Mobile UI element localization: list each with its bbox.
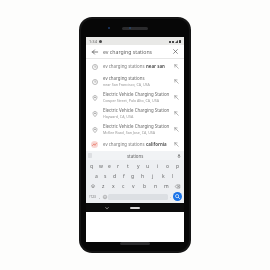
staticText: b	[143, 183, 147, 190]
button[interactable]: i	[154, 162, 162, 170]
staticText: v	[132, 183, 135, 190]
staticText: x	[112, 183, 115, 190]
staticText: ev charging stations	[103, 75, 145, 81]
staticText: Cowper Street, Palo Alto, CA, USA	[103, 98, 159, 103]
button[interactable]: ,	[97, 192, 102, 201]
staticText: Hayward, CA, USA	[103, 114, 134, 119]
button[interactable]: f	[120, 172, 127, 180]
button[interactable]: Electric Vehicle Charging Station	[86, 89, 184, 105]
staticText: y	[137, 163, 140, 170]
button[interactable]: o	[164, 162, 172, 170]
staticText: k	[162, 173, 165, 180]
button[interactable]: t	[124, 162, 132, 170]
button[interactable]: Insert suggestion	[172, 125, 180, 133]
staticText: i	[157, 163, 159, 170]
button[interactable]: Voice input	[176, 153, 182, 159]
staticText: stations	[127, 153, 144, 159]
button[interactable]: Emoji	[102, 192, 108, 201]
staticText: .	[170, 194, 172, 199]
staticText: m	[164, 183, 169, 190]
staticText: d	[113, 173, 117, 180]
staticText: o	[166, 163, 170, 170]
button[interactable]: Hide keyboard	[104, 205, 110, 211]
button[interactable]: .	[168, 192, 173, 201]
staticText: q	[90, 163, 94, 170]
staticText: McKee Road, San Jose, CA, USA	[103, 130, 156, 135]
staticText: g	[131, 173, 135, 180]
button[interactable]: Search	[173, 192, 182, 201]
button[interactable]: y	[134, 162, 142, 170]
staticText: 1:34	[89, 39, 97, 44]
staticText: z	[102, 183, 105, 190]
button[interactable]: a	[93, 172, 100, 180]
staticText: ?123	[89, 195, 96, 199]
staticText: c	[122, 183, 125, 190]
button[interactable]: ev charging stations	[86, 59, 184, 73]
staticText: Electric Vehicle Charging Station	[103, 123, 170, 129]
button[interactable]: z	[99, 182, 107, 190]
staticText: Electric Vehicle Charging Station	[103, 107, 170, 113]
staticText: t	[127, 163, 129, 170]
staticText: r	[117, 163, 120, 170]
button[interactable]: Insert suggestion	[172, 109, 180, 117]
button[interactable]: Clear search	[171, 47, 180, 56]
staticText: p	[176, 163, 180, 170]
button[interactable]: x	[109, 182, 117, 190]
staticText: j	[152, 173, 154, 180]
button[interactable]: b	[140, 182, 149, 190]
staticText: h	[141, 173, 145, 180]
button[interactable]: Back	[86, 45, 184, 58]
button[interactable]: Backspace	[173, 182, 182, 190]
button[interactable]: c	[119, 182, 127, 190]
button[interactable]: p	[174, 162, 182, 170]
button[interactable]: u	[144, 162, 152, 170]
button[interactable]: Insert suggestion	[172, 77, 180, 85]
button[interactable]: d	[111, 172, 118, 180]
button[interactable]: Electric Vehicle Charging Station	[86, 105, 184, 121]
button[interactable]: q	[88, 162, 95, 170]
staticText: near san franc…	[146, 63, 170, 69]
staticText: n	[154, 183, 158, 190]
button[interactable]: ?123	[88, 192, 97, 201]
button[interactable]: Shift	[88, 182, 97, 190]
staticText: near San Francisco, CA, USA	[103, 82, 150, 87]
button[interactable]: l	[169, 172, 177, 180]
button[interactable]: e	[106, 162, 113, 170]
button[interactable]: k	[159, 172, 167, 180]
button[interactable]: r	[115, 162, 122, 170]
button[interactable]: Insert suggestion	[172, 140, 180, 148]
button[interactable]: j	[149, 172, 157, 180]
button[interactable]: Insert suggestion	[172, 93, 180, 101]
button[interactable]: h	[139, 172, 147, 180]
button[interactable]: g	[129, 172, 137, 180]
button[interactable]: m	[162, 182, 171, 190]
button[interactable]: n	[151, 182, 160, 190]
staticText: ,	[99, 194, 101, 199]
button[interactable]: s	[102, 172, 109, 180]
staticText: l	[172, 173, 174, 180]
staticText: w	[99, 163, 103, 170]
staticText: california	[146, 141, 167, 147]
button[interactable]: Home	[130, 207, 140, 209]
button[interactable]: ev charging stations	[86, 73, 184, 89]
button[interactable]: Back	[90, 47, 99, 56]
staticText: e	[108, 163, 111, 170]
staticText: ev charging stations	[103, 141, 146, 147]
button[interactable]: ev charging stations	[86, 137, 184, 151]
button[interactable]: v	[129, 182, 138, 190]
staticText: ev charging stations	[103, 48, 171, 55]
staticText: Electric Vehicle Charging Station	[103, 91, 170, 97]
staticText: s	[104, 173, 107, 180]
button[interactable]: Electric Vehicle Charging Station	[86, 121, 184, 137]
button[interactable]: Insert suggestion	[172, 62, 180, 70]
staticText: f	[123, 173, 125, 180]
staticText: u	[146, 163, 150, 170]
button[interactable]: w	[97, 162, 104, 170]
staticText: a	[95, 173, 98, 180]
staticText: ev charging stations	[103, 63, 146, 69]
